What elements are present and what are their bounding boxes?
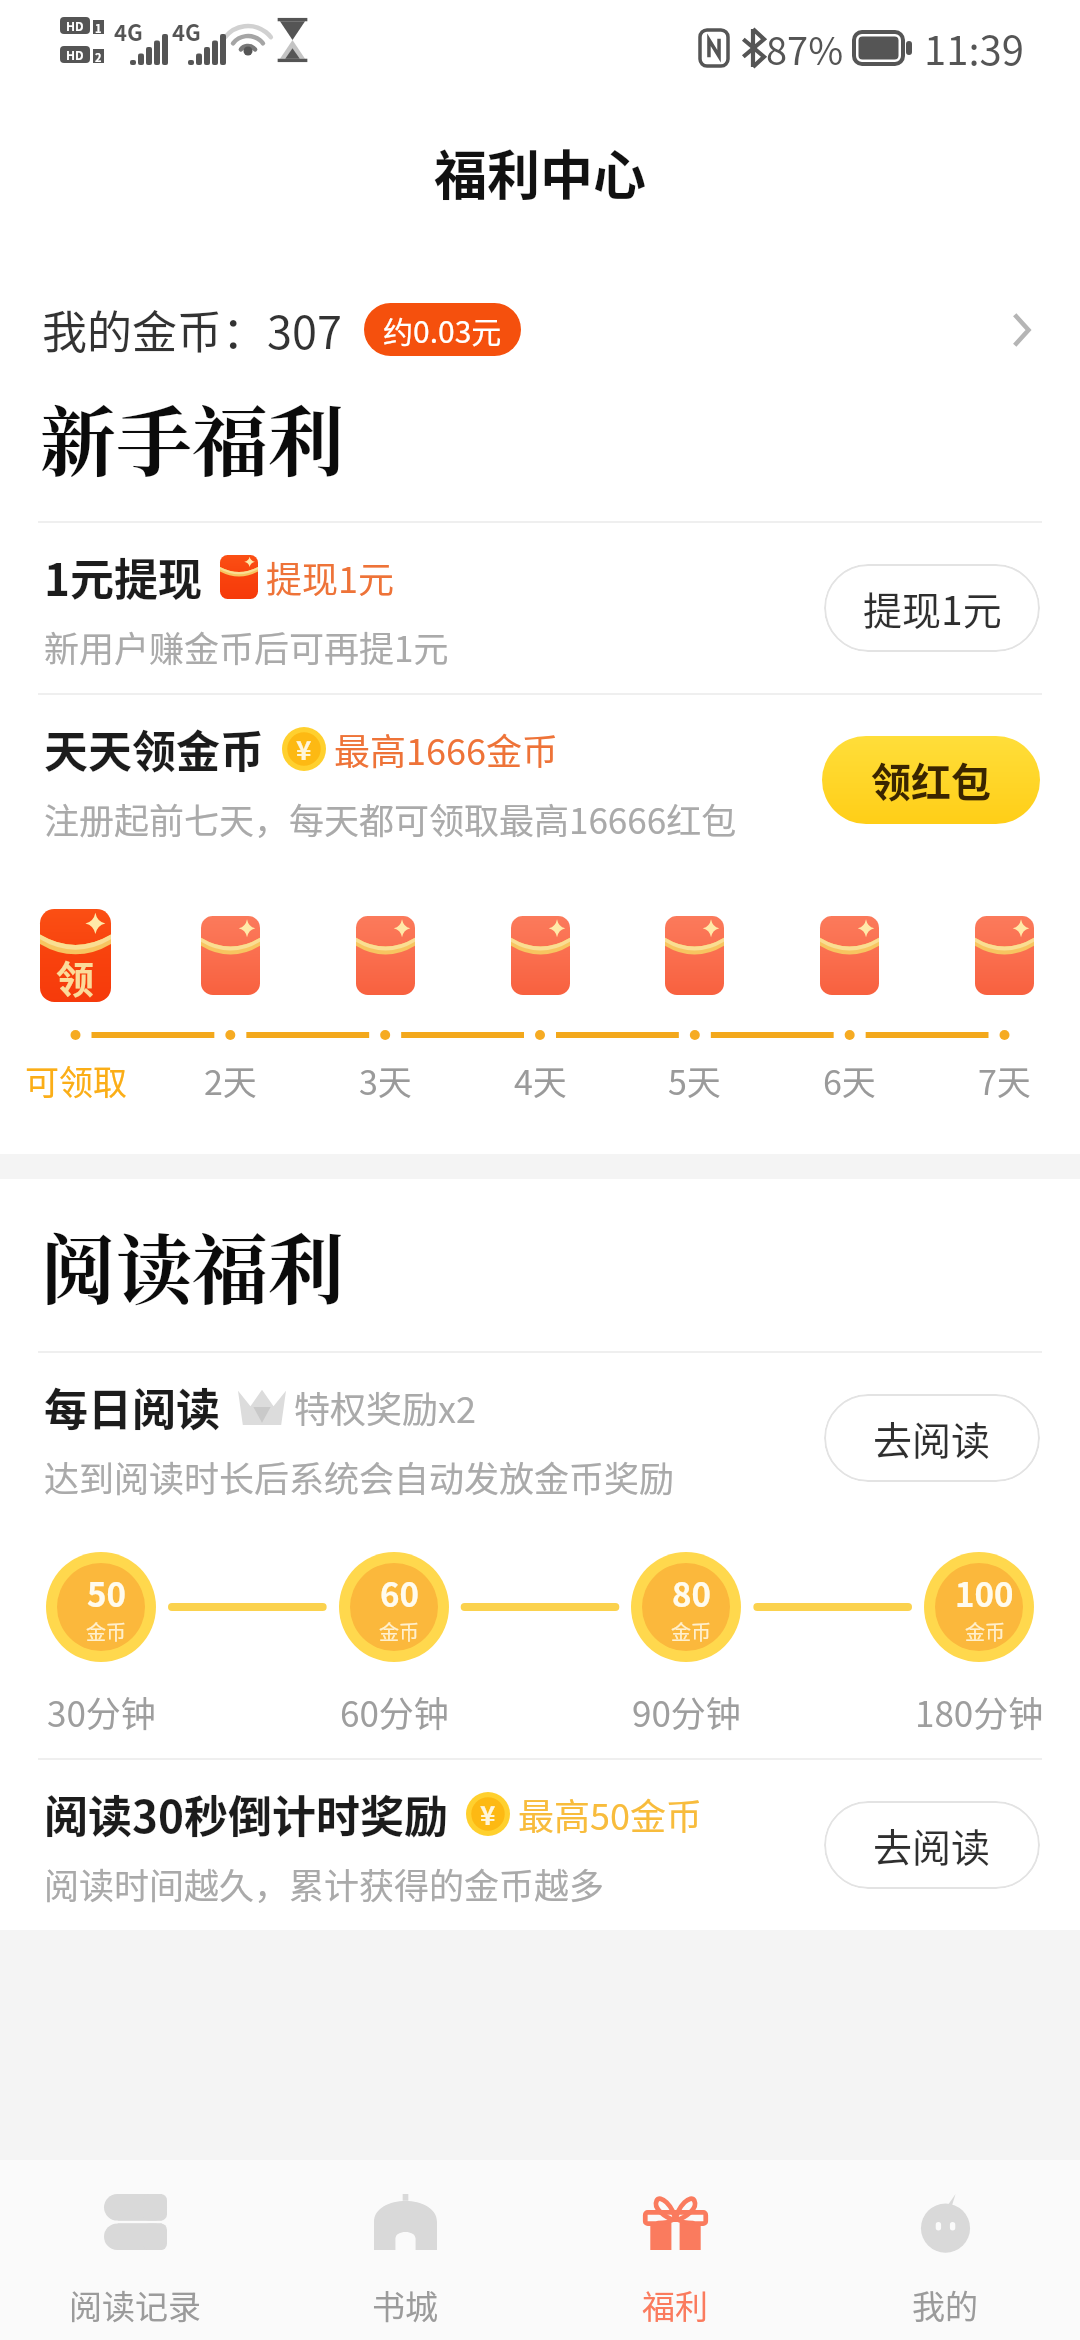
staticText: 87% [766, 21, 844, 76]
staticText: 新用户赚金币后可再提1元 [44, 621, 449, 672]
staticText: 100 [955, 1569, 1014, 1617]
staticText: 11:39 [924, 19, 1024, 77]
staticText: 阅读时间越久，累计获得的金币越多 [44, 1858, 605, 1909]
staticText: 3天 [359, 1056, 412, 1105]
staticText: 金币 [379, 1617, 419, 1646]
button[interactable]: 红包 4天 [505, 909, 576, 1002]
button[interactable]: 红包 6天 [814, 909, 885, 1002]
staticText: 阅读福利 [40, 1211, 344, 1320]
button[interactable]: 阅读记录 [0, 2160, 270, 2340]
staticText: 1元提现 [44, 545, 202, 609]
staticText: ¥ [480, 1795, 496, 1833]
staticText: 4G [114, 15, 143, 47]
staticText: HD [66, 46, 84, 63]
staticText: 新手福利 [40, 383, 344, 492]
staticText: 30分钟 [47, 1686, 156, 1737]
button[interactable]: 提现1元 [824, 564, 1040, 652]
staticText: 60分钟 [340, 1686, 449, 1737]
staticText: 阅读记录 [69, 2281, 201, 2329]
staticText: 我的金币：307 [42, 297, 342, 362]
button[interactable]: 领红包 [822, 736, 1040, 824]
staticText: 达到阅读时长后系统会自动发放金币奖励 [44, 1451, 675, 1502]
staticText: 约0.03元 [383, 308, 502, 351]
staticText: 可领取 [25, 1056, 127, 1105]
staticText: 90分钟 [632, 1686, 741, 1737]
staticText: 领 [56, 949, 95, 1002]
staticText: 60 [380, 1569, 419, 1617]
staticText: 福利中心 [434, 134, 646, 211]
staticText: 4天 [514, 1056, 567, 1105]
staticText: 2天 [204, 1056, 257, 1105]
button[interactable]: 红包 3天 [350, 909, 421, 1002]
button[interactable]: 每日阅读 [0, 1353, 1080, 1523]
staticText: 2 [95, 49, 102, 63]
staticText: HD [66, 17, 84, 34]
staticText: 最高50金币 [518, 1788, 702, 1840]
button[interactable]: 福利 [540, 2160, 810, 2340]
staticText: 提现1元 [863, 580, 1002, 636]
staticText: 领红包 [871, 751, 991, 809]
staticText: 福利 [642, 2281, 708, 2329]
button[interactable]: 红包 可领取 [40, 909, 111, 1002]
staticText: 去阅读 [873, 1410, 991, 1466]
staticText: 80 [672, 1569, 711, 1617]
button[interactable]: 天天领金币 [0, 695, 1080, 865]
other: More [1000, 307, 1046, 353]
staticText: 我的 [912, 2281, 978, 2329]
staticText: ¥ [296, 730, 312, 768]
staticText: 阅读30秒倒计时奖励 [44, 1782, 448, 1846]
button[interactable]: 我的 [810, 2160, 1080, 2340]
staticText: 金币 [86, 1617, 126, 1646]
staticText: 5天 [668, 1056, 721, 1105]
staticText: 提现1元 [266, 551, 394, 603]
staticText: 7天 [978, 1056, 1031, 1105]
button[interactable]: 红包 5天 [659, 909, 730, 1002]
button[interactable]: 红包 2天 [195, 909, 266, 1002]
button[interactable]: 1元提现 [0, 523, 1080, 693]
staticText: 金币 [671, 1617, 711, 1646]
button[interactable]: 阅读30秒倒计时奖励 [0, 1760, 1080, 1930]
button[interactable]: 红包 7天 [969, 909, 1040, 1002]
staticText: 注册起前七天，每天都可领取最高16666红包 [44, 793, 737, 844]
staticText: 180分钟 [915, 1686, 1044, 1737]
staticText: 金币 [965, 1617, 1005, 1646]
staticText: 4G [172, 15, 201, 47]
button[interactable]: 去阅读 [824, 1394, 1040, 1482]
staticText: 去阅读 [873, 1817, 991, 1873]
staticText: 50 [87, 1569, 126, 1617]
staticText: 书城 [372, 2281, 438, 2329]
staticText: 天天领金币 [44, 717, 264, 781]
staticText: 6天 [823, 1056, 876, 1105]
staticText: 每日阅读 [44, 1375, 220, 1439]
button[interactable]: 去阅读 [824, 1801, 1040, 1889]
staticText: 最高1666金币 [334, 723, 558, 775]
button[interactable]: 我的金币：307 [0, 248, 1080, 383]
button[interactable]: 书城 [270, 2160, 540, 2340]
staticText: 特权奖励x2 [294, 1381, 476, 1433]
staticText: 1 [95, 20, 102, 34]
